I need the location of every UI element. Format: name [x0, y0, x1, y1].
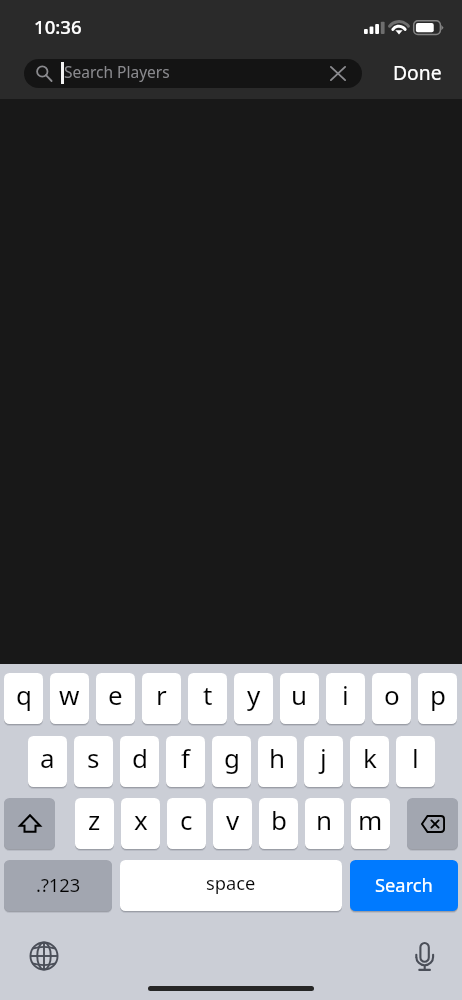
- button[interactable]: .?123: [4, 860, 112, 911]
- button[interactable]: Search: [350, 860, 458, 911]
- button[interactable]: Search Players: [24, 59, 362, 88]
- staticText: n: [316, 802, 333, 837]
- staticText: h: [269, 740, 286, 775]
- button[interactable]: l: [396, 736, 435, 787]
- staticText: y: [247, 677, 261, 712]
- staticText: w: [59, 677, 80, 712]
- button[interactable]: h: [258, 736, 297, 787]
- staticText: f: [181, 740, 190, 775]
- button[interactable]: g: [212, 736, 251, 787]
- button[interactable]: q: [4, 673, 43, 724]
- button[interactable]: c: [167, 798, 206, 849]
- button[interactable]: Done: [378, 55, 456, 89]
- button[interactable]: i: [326, 673, 365, 724]
- button[interactable]: x: [121, 798, 160, 849]
- button[interactable]: p: [418, 673, 457, 724]
- staticText: t: [203, 677, 213, 712]
- staticText: b: [271, 802, 287, 837]
- button[interactable]: t: [188, 673, 227, 724]
- button[interactable]: b: [259, 798, 298, 849]
- button[interactable]: m: [351, 798, 390, 849]
- staticText: x: [134, 802, 148, 837]
- staticText: .?123: [36, 872, 81, 897]
- button[interactable]: e: [96, 673, 135, 724]
- button[interactable]: space: [120, 860, 342, 911]
- staticText: 10:36: [34, 14, 82, 39]
- staticText: c: [180, 802, 193, 837]
- staticText: Search Players: [64, 61, 170, 82]
- staticText: Done: [393, 59, 442, 85]
- button[interactable]: Shift: [4, 798, 55, 849]
- staticText: p: [430, 677, 446, 712]
- staticText: space: [206, 870, 256, 895]
- staticText: k: [363, 740, 377, 775]
- staticText: d: [132, 740, 148, 775]
- staticText: j: [320, 740, 327, 775]
- button[interactable]: Clear search: [315, 59, 361, 88]
- staticText: l: [412, 740, 419, 775]
- button[interactable]: r: [142, 673, 181, 724]
- button[interactable]: j: [304, 736, 343, 787]
- staticText: q: [16, 677, 32, 712]
- button[interactable]: a: [28, 736, 67, 787]
- staticText: Search: [375, 872, 433, 897]
- staticText: a: [40, 740, 55, 775]
- button[interactable]: d: [120, 736, 159, 787]
- button[interactable]: Backspace: [407, 798, 458, 849]
- button[interactable]: s: [74, 736, 113, 787]
- button[interactable]: f: [166, 736, 205, 787]
- button[interactable]: n: [305, 798, 344, 849]
- button[interactable]: y: [234, 673, 273, 724]
- staticText: g: [224, 740, 240, 775]
- staticText: i: [342, 677, 349, 712]
- staticText: r: [156, 677, 167, 712]
- button[interactable]: w: [50, 673, 89, 724]
- button[interactable]: k: [350, 736, 389, 787]
- staticText: v: [226, 802, 240, 837]
- button[interactable]: o: [372, 673, 411, 724]
- staticText: e: [108, 677, 123, 712]
- staticText: o: [384, 677, 400, 712]
- button[interactable]: Dictate: [407, 939, 443, 975]
- button[interactable]: u: [280, 673, 319, 724]
- staticText: m: [358, 802, 383, 837]
- button[interactable]: z: [75, 798, 114, 849]
- button[interactable]: v: [213, 798, 252, 849]
- staticText: z: [88, 802, 101, 837]
- button[interactable]: Switch keyboard: [26, 938, 62, 974]
- staticText: s: [87, 740, 100, 775]
- staticText: u: [291, 677, 308, 712]
